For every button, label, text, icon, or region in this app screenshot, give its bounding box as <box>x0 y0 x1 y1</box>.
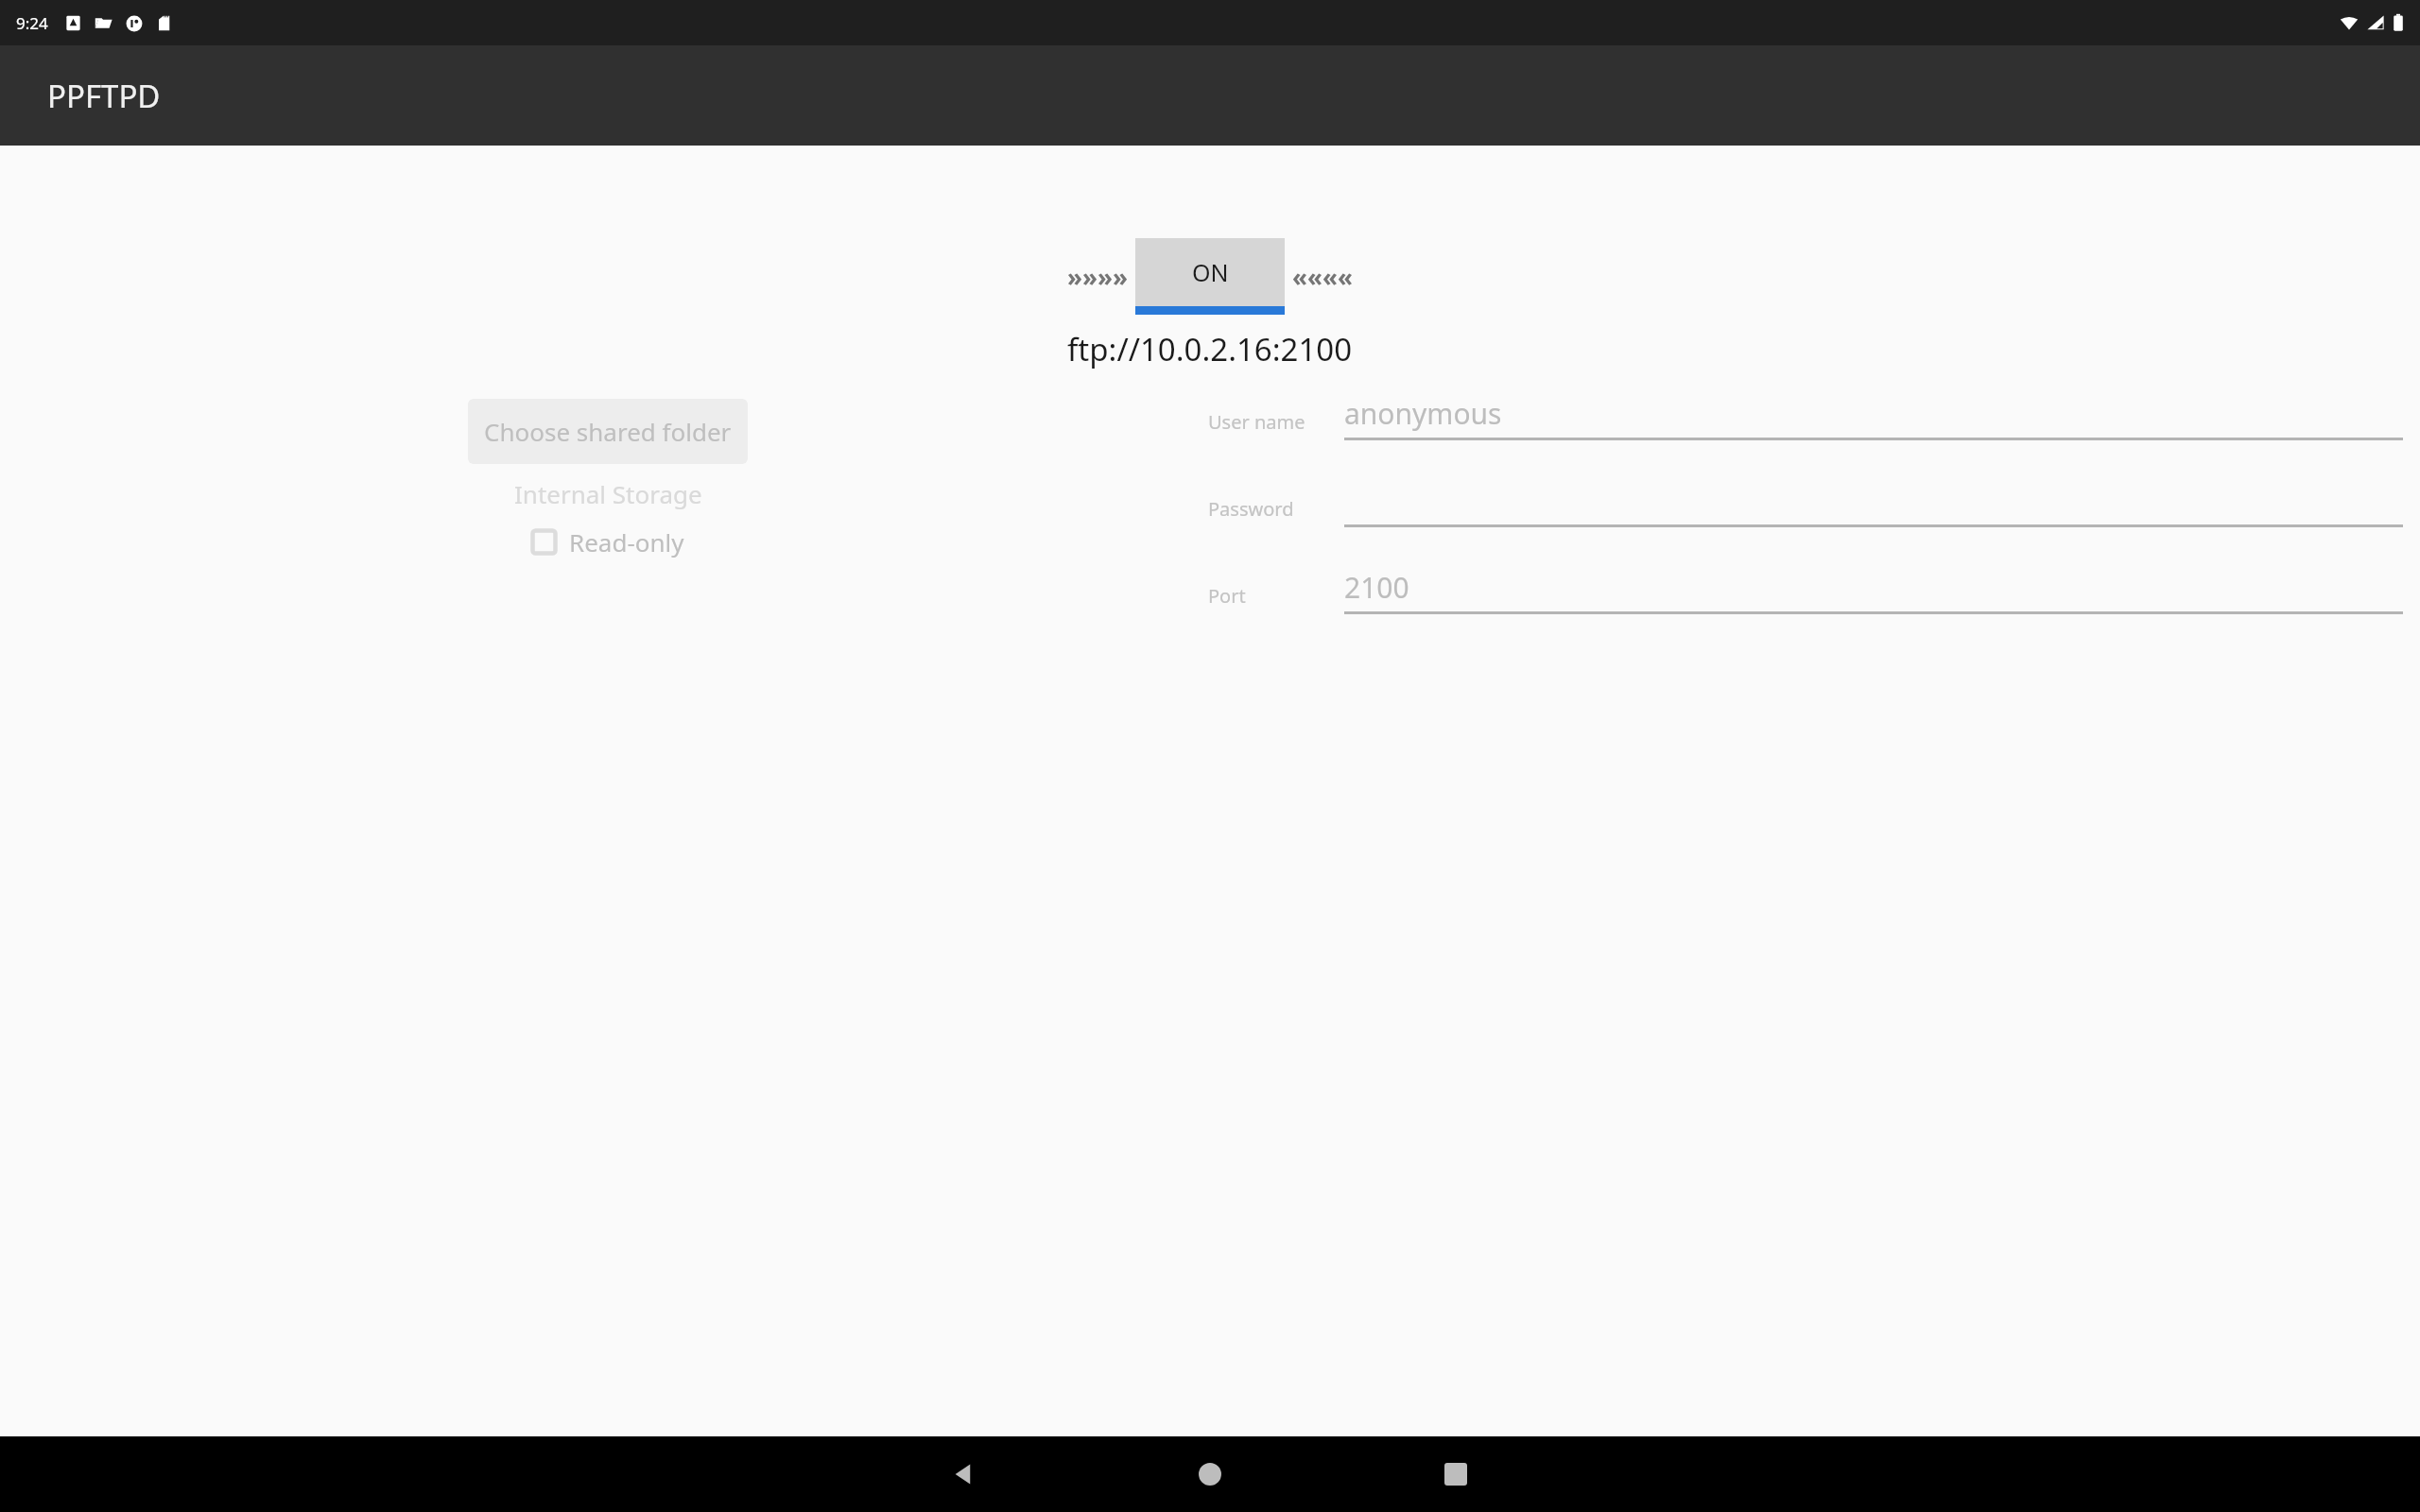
staticText: «««« <box>1292 260 1353 293</box>
button[interactable]: Back <box>926 1436 1002 1512</box>
staticText: ON <box>1192 256 1229 288</box>
button[interactable]: Password <box>1208 469 2403 527</box>
staticText: 9:24 <box>16 12 48 34</box>
staticText: ftp://10.0.2.16:2100 <box>1067 328 1353 370</box>
staticText: User name <box>1208 409 1305 435</box>
staticText: Port <box>1208 583 1246 609</box>
button[interactable]: ON <box>1135 238 1285 315</box>
staticText: anonymous <box>1344 394 1502 433</box>
button[interactable]: Port <box>1208 556 2403 614</box>
staticText: »»»» <box>1067 260 1128 293</box>
staticText: Choose shared folder <box>484 415 732 448</box>
staticText: PPFTPD <box>47 75 161 117</box>
staticText: Read-only <box>569 525 684 558</box>
button[interactable]: User name <box>1208 382 2403 440</box>
staticText: Password <box>1208 496 1294 522</box>
button[interactable]: Home <box>1172 1436 1248 1512</box>
staticText: Internal Storage <box>514 477 702 510</box>
staticText: 2100 <box>1344 568 1409 607</box>
button[interactable]: Choose shared folder <box>468 399 748 464</box>
button[interactable]: Recent apps <box>1418 1436 1494 1512</box>
button[interactable]: Read-only <box>527 522 688 562</box>
